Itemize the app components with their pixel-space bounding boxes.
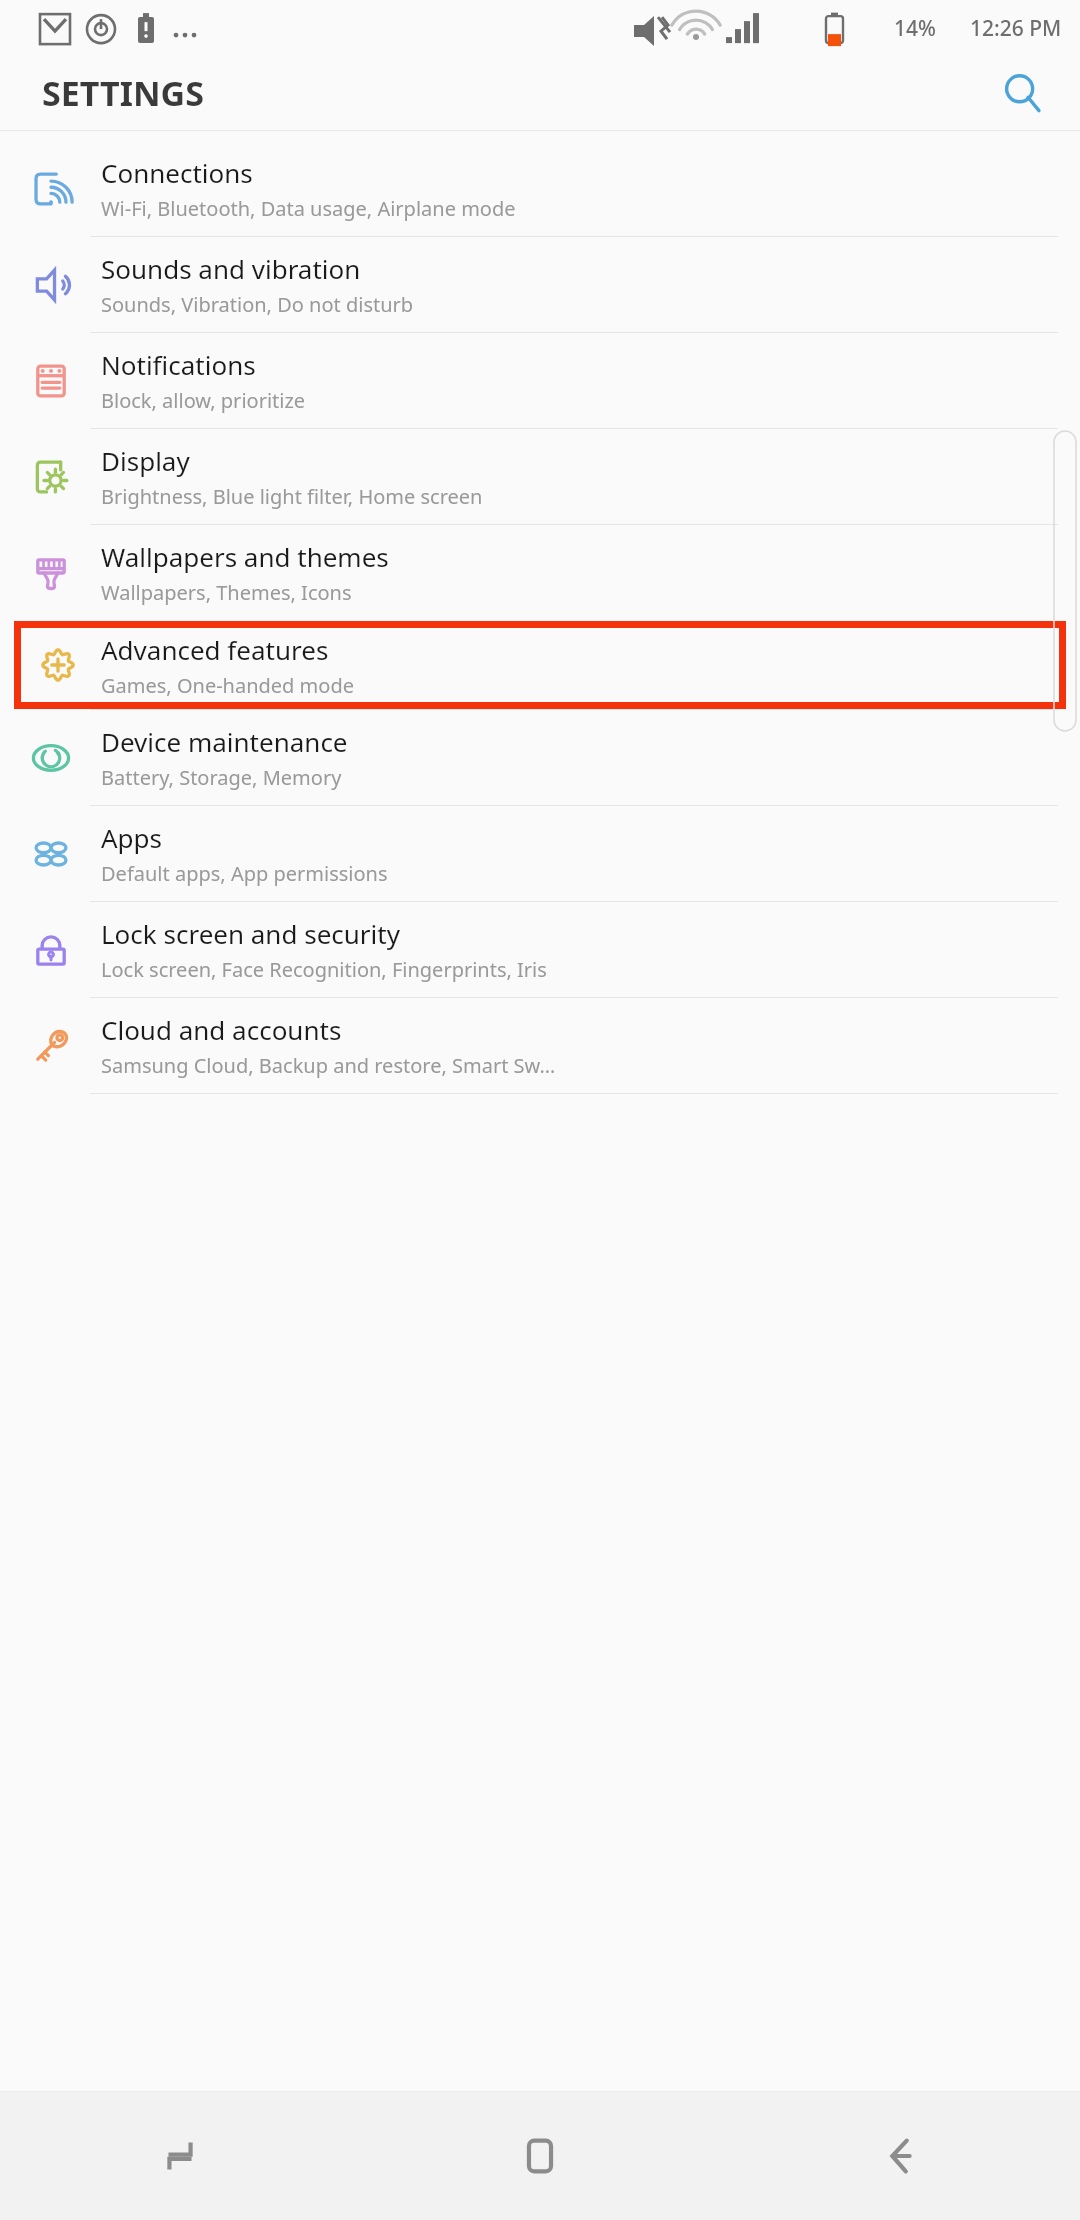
staticText: Samsung Cloud, Backup and restore, Smart… — [101, 1052, 556, 1079]
button[interactable]: Connections — [0, 141, 1080, 236]
staticText: 14% — [894, 14, 936, 43]
staticText: Connections — [101, 155, 253, 190]
staticText: Block, allow, prioritize — [101, 387, 306, 414]
staticText: Apps — [101, 820, 163, 855]
button[interactable]: Notifications — [0, 333, 1080, 428]
staticText: Sounds, Vibration, Do not disturb — [101, 291, 414, 318]
button[interactable]: Wallpapers and themes — [0, 525, 1080, 620]
button[interactable]: Cloud and accounts — [0, 998, 1080, 1093]
button[interactable]: Search — [992, 62, 1054, 124]
staticText: Lock screen, Face Recognition, Fingerpri… — [101, 956, 547, 983]
staticText: Battery, Storage, Memory — [101, 764, 342, 791]
button[interactable]: Apps — [0, 806, 1080, 901]
staticText: Display — [101, 443, 190, 478]
button[interactable]: Sounds and vibration — [0, 237, 1080, 332]
staticText: Wallpapers and themes — [101, 539, 389, 574]
staticText: 12:26 PM — [970, 14, 1062, 43]
staticText: Device maintenance — [101, 724, 348, 759]
button[interactable]: Home — [360, 2092, 720, 2220]
staticText: Sounds and vibration — [101, 251, 361, 286]
staticText: Cloud and accounts — [101, 1012, 342, 1047]
button[interactable]: Advanced features — [14, 621, 1066, 709]
staticText: Wi-Fi, Bluetooth, Data usage, Airplane m… — [101, 195, 516, 222]
staticText: SETTINGS — [42, 70, 204, 116]
staticText: Brightness, Blue light filter, Home scre… — [101, 483, 483, 510]
staticText: Lock screen and security — [101, 916, 400, 951]
staticText: Notifications — [101, 347, 256, 382]
staticText: Default apps, App permissions — [101, 860, 388, 887]
staticText: Advanced features — [101, 632, 329, 667]
staticText: Wallpapers, Themes, Icons — [101, 579, 352, 606]
button[interactable]: Display — [0, 429, 1080, 524]
button[interactable]: Lock screen and security — [0, 902, 1080, 997]
staticText: Games, One-handed mode — [101, 672, 354, 699]
button[interactable]: Back — [720, 2092, 1080, 2220]
button[interactable]: Recents — [0, 2092, 360, 2220]
button[interactable]: Device maintenance — [0, 710, 1080, 805]
